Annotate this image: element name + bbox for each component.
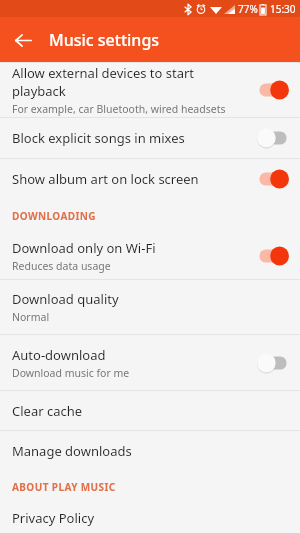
button[interactable]: Download quality xyxy=(0,280,300,334)
staticText: Download music for me xyxy=(12,366,130,380)
staticText: Music settings xyxy=(49,29,160,51)
staticText: For example, car Bluetooth, wired headse… xyxy=(12,102,226,116)
staticText: Auto-download xyxy=(12,346,106,364)
staticText: Allow external devices to start playback xyxy=(12,64,248,100)
button[interactable]: Toggle off xyxy=(256,128,290,148)
button[interactable]: Block explicit songs in mixes xyxy=(0,118,300,158)
staticText: Clear cache xyxy=(12,402,83,420)
staticText: ABOUT PLAY MUSIC xyxy=(12,480,116,494)
button[interactable]: Toggle on xyxy=(256,169,290,189)
staticText: Manage downloads xyxy=(12,442,132,460)
staticText: Download only on Wi-Fi xyxy=(12,239,156,257)
staticText: 77% xyxy=(238,2,258,16)
button[interactable]: Allow external devices to start playback xyxy=(0,63,300,117)
staticText: Reduces data usage xyxy=(12,259,111,273)
button[interactable]: Auto-download xyxy=(0,335,300,390)
button[interactable]: Toggle off xyxy=(256,353,290,373)
staticText: Normal xyxy=(12,310,50,324)
button[interactable]: Toggle on xyxy=(256,246,290,266)
staticText: Show album art on lock screen xyxy=(12,170,199,188)
staticText: 15:30 xyxy=(270,2,296,16)
staticText: DOWNLOADING xyxy=(12,209,96,223)
button[interactable]: Download only on Wi-Fi xyxy=(0,232,300,279)
staticText: Privacy Policy xyxy=(12,509,95,527)
staticText: Block explicit songs in mixes xyxy=(12,129,185,147)
button[interactable]: Toggle on xyxy=(256,80,290,100)
button[interactable]: Privacy Policy xyxy=(0,503,300,533)
staticText: Download quality xyxy=(12,290,119,308)
button[interactable]: Manage downloads xyxy=(0,431,300,470)
button[interactable]: Clear cache xyxy=(0,391,300,430)
button[interactable]: Back xyxy=(6,23,40,57)
button[interactable]: Show album art on lock screen xyxy=(0,159,300,199)
